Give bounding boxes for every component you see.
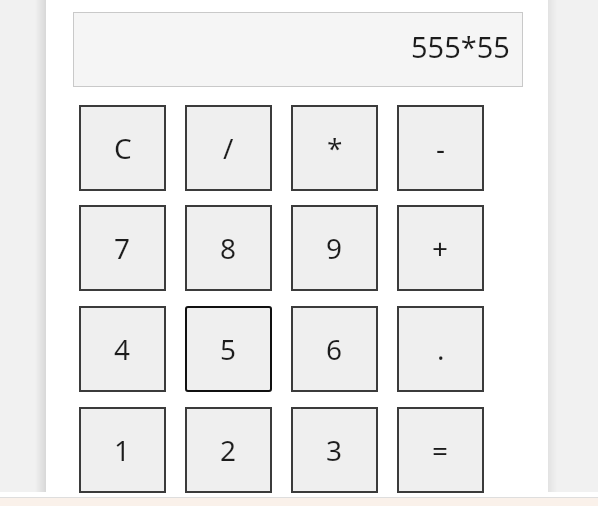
staticText: + xyxy=(432,229,449,267)
button[interactable]: 5 xyxy=(185,306,272,392)
button[interactable]: = xyxy=(397,407,484,493)
button[interactable]: 7 xyxy=(79,205,166,291)
button[interactable]: 8 xyxy=(185,205,272,291)
staticText: 3 xyxy=(326,431,343,469)
staticText: . xyxy=(437,330,445,368)
button[interactable]: 2 xyxy=(185,407,272,493)
staticText: / xyxy=(223,129,234,167)
button[interactable]: 3 xyxy=(291,407,378,493)
staticText: 9 xyxy=(326,229,343,267)
staticText: 7 xyxy=(114,229,131,267)
button[interactable]: 555*55 xyxy=(73,12,523,87)
button[interactable]: C xyxy=(79,105,166,191)
button[interactable]: + xyxy=(397,205,484,291)
staticText: 8 xyxy=(220,229,237,267)
button[interactable]: * xyxy=(291,105,378,191)
staticText: = xyxy=(432,431,449,469)
button[interactable]: 4 xyxy=(79,306,166,392)
button[interactable]: - xyxy=(397,105,484,191)
staticText: - xyxy=(436,129,446,167)
button[interactable]: 6 xyxy=(291,306,378,392)
staticText: * xyxy=(327,129,343,167)
staticText: 1 xyxy=(114,431,131,469)
staticText: C xyxy=(114,129,132,167)
button[interactable]: 9 xyxy=(291,205,378,291)
staticText: 2 xyxy=(220,431,237,469)
staticText: 5 xyxy=(220,330,237,368)
button[interactable]: 1 xyxy=(79,407,166,493)
button[interactable]: / xyxy=(185,105,272,191)
staticText: 555*55 xyxy=(411,27,510,66)
staticText: 4 xyxy=(114,330,131,368)
staticText: 6 xyxy=(326,330,343,368)
button[interactable]: . xyxy=(397,306,484,392)
